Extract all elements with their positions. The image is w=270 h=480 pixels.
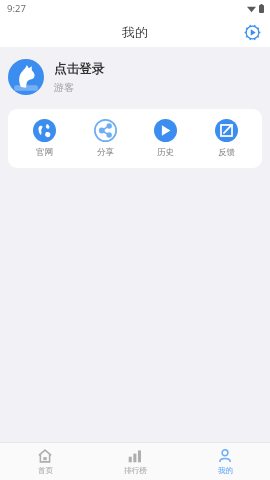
button[interactable]: 我的 bbox=[180, 443, 270, 480]
button[interactable]: 点击登录 bbox=[8, 55, 262, 99]
staticText: 首页 bbox=[38, 466, 53, 475]
button[interactable]: 首页 bbox=[0, 443, 90, 480]
staticText: 点击登录 bbox=[54, 61, 104, 77]
staticText: 9:27 bbox=[7, 2, 26, 15]
button[interactable]: 反馈 bbox=[201, 116, 251, 161]
button[interactable]: 官网 bbox=[19, 116, 69, 161]
button[interactable]: 历史 bbox=[140, 116, 190, 161]
staticText: 反馈 bbox=[218, 147, 235, 158]
staticText: 历史 bbox=[157, 147, 174, 158]
staticText: 我的 bbox=[122, 24, 148, 40]
staticText: 分享 bbox=[97, 147, 114, 158]
staticText: 官网 bbox=[36, 147, 53, 158]
button[interactable]: Settings bbox=[241, 21, 263, 43]
staticText: 排行榜 bbox=[124, 466, 147, 475]
button[interactable]: 排行榜 bbox=[90, 443, 180, 480]
button[interactable]: 分享 bbox=[80, 116, 130, 161]
staticText: 我的 bbox=[218, 466, 233, 475]
staticText: 游客 bbox=[54, 81, 74, 94]
